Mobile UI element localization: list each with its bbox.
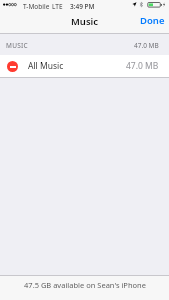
staticText: 47.5 GB available on Sean's iPhone bbox=[24, 280, 146, 290]
staticText: 3:49 PM bbox=[70, 2, 95, 11]
button[interactable]: Delete All Music bbox=[7, 61, 18, 72]
staticText: 47.0 MB bbox=[126, 60, 159, 72]
button[interactable]: Done bbox=[134, 9, 169, 31]
staticText: Done bbox=[140, 14, 165, 27]
staticText: Music bbox=[71, 15, 99, 28]
staticText: 47.0 MB bbox=[134, 41, 159, 50]
staticText: LTE bbox=[52, 2, 63, 11]
staticText: MUSIC bbox=[6, 41, 28, 50]
staticText: T-Mobile bbox=[23, 2, 50, 11]
staticText: All Music bbox=[28, 60, 64, 72]
button[interactable]: Delete All Music bbox=[0, 55, 169, 77]
